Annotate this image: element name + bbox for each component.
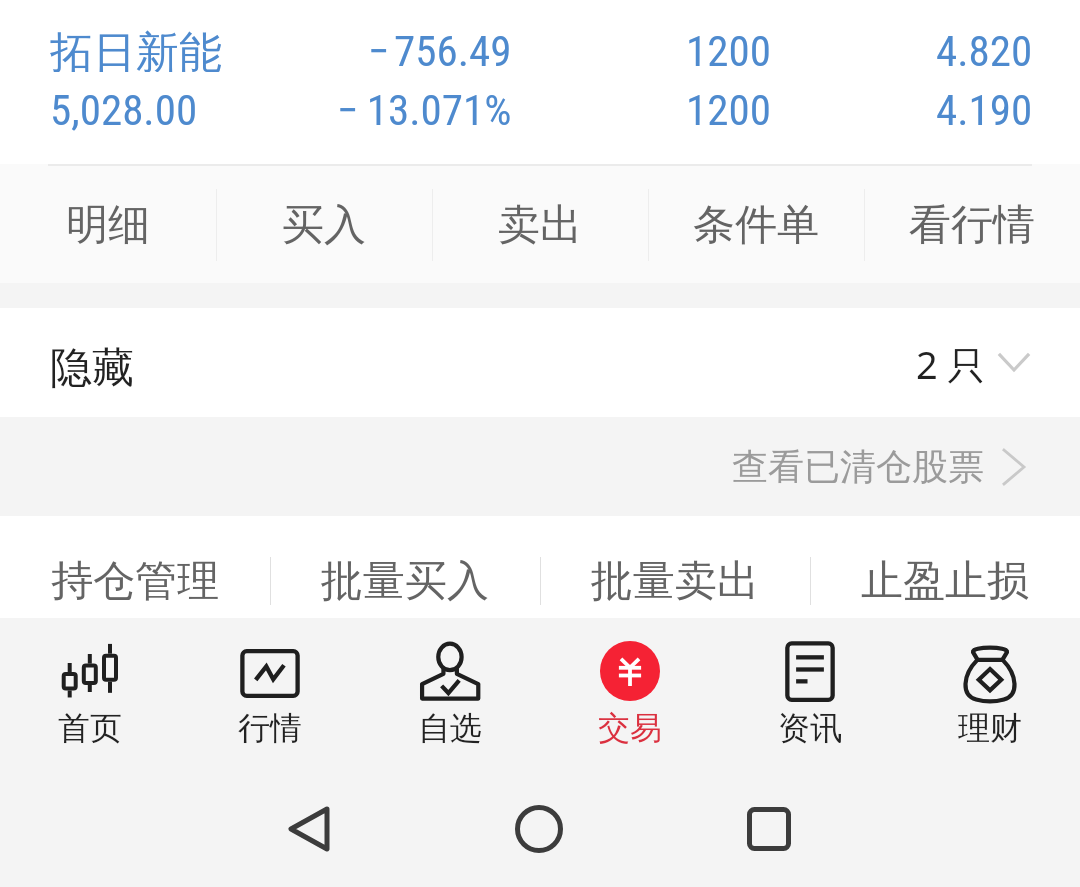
staticText: 理财	[958, 708, 1022, 748]
button[interactable]: 条件单	[648, 164, 864, 283]
button[interactable]: 资讯	[720, 618, 900, 771]
staticText: − 756.49	[368, 26, 512, 72]
button[interactable]: 持仓管理	[0, 516, 270, 618]
button[interactable]: 查看已清仓股票	[0, 417, 1080, 516]
staticText: 批量买入	[321, 555, 489, 608]
button[interactable]: 隐藏	[0, 308, 1080, 417]
button[interactable]: 止盈止损	[810, 516, 1080, 618]
staticText: 条件单	[693, 199, 819, 252]
staticText: 交易	[598, 708, 662, 748]
button[interactable]: 卖出	[432, 164, 648, 283]
staticText: 持仓管理	[51, 555, 219, 608]
staticText: 1200	[686, 85, 771, 131]
button[interactable]: Recents	[746, 806, 792, 852]
button[interactable]: 行情	[180, 618, 360, 771]
button[interactable]: 交易	[540, 618, 720, 771]
button[interactable]: 自选	[360, 618, 540, 771]
staticText: 行情	[238, 708, 302, 748]
staticText: 资讯	[778, 708, 842, 748]
staticText: 明细	[66, 199, 150, 252]
staticText: 批量卖出	[591, 555, 759, 608]
staticText: 自选	[418, 708, 482, 748]
staticText: 5,028.00	[50, 85, 198, 131]
staticText: 买入	[282, 199, 366, 252]
staticText: 隐藏	[50, 342, 134, 395]
button[interactable]: 买入	[216, 164, 432, 283]
staticText: 4.190	[936, 85, 1033, 131]
staticText: 看行情	[909, 199, 1035, 252]
button[interactable]: 看行情	[864, 164, 1080, 283]
staticText: 止盈止损	[861, 555, 1029, 608]
button[interactable]: 批量卖出	[540, 516, 810, 618]
staticText: 查看已清仓股票	[732, 444, 984, 489]
button[interactable]: 批量买入	[270, 516, 540, 618]
button[interactable]: 首页	[0, 618, 180, 771]
staticText: 拓日新能	[50, 26, 222, 72]
staticText: − 13.071%	[337, 85, 512, 131]
staticText: 首页	[58, 708, 122, 748]
staticText: 2 只	[916, 338, 986, 390]
staticText: 1200	[686, 26, 771, 72]
staticText: 4.820	[936, 26, 1033, 72]
button[interactable]: 明细	[0, 164, 216, 283]
button[interactable]: Back	[286, 806, 332, 852]
button[interactable]: Home	[514, 804, 564, 854]
button[interactable]: 理财	[900, 618, 1080, 771]
staticText: 卖出	[498, 199, 582, 252]
